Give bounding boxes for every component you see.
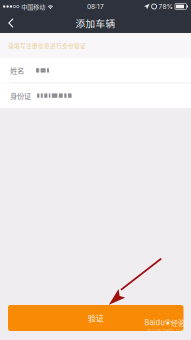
staticText: Baidu [145, 318, 165, 327]
button[interactable]: 姓名 [0, 58, 191, 83]
staticText: 08:17 [87, 2, 104, 11]
staticText: 添加车辆 [75, 16, 115, 30]
staticText: 中国移动 [21, 2, 45, 11]
button[interactable]: 验证 [8, 305, 183, 331]
staticText: jingyan.baidu.com [147, 328, 185, 333]
button[interactable]: 身份证 [0, 83, 191, 108]
staticText: 验证 [88, 312, 104, 324]
staticText: 请填写注册信息进行身份验证 [8, 41, 86, 49]
button[interactable]: Back [0, 14, 28, 32]
staticText: 身份证 [10, 90, 31, 101]
staticText: 经验 [171, 317, 185, 327]
staticText: 姓名 [10, 65, 24, 76]
staticText: 78% [158, 2, 173, 11]
